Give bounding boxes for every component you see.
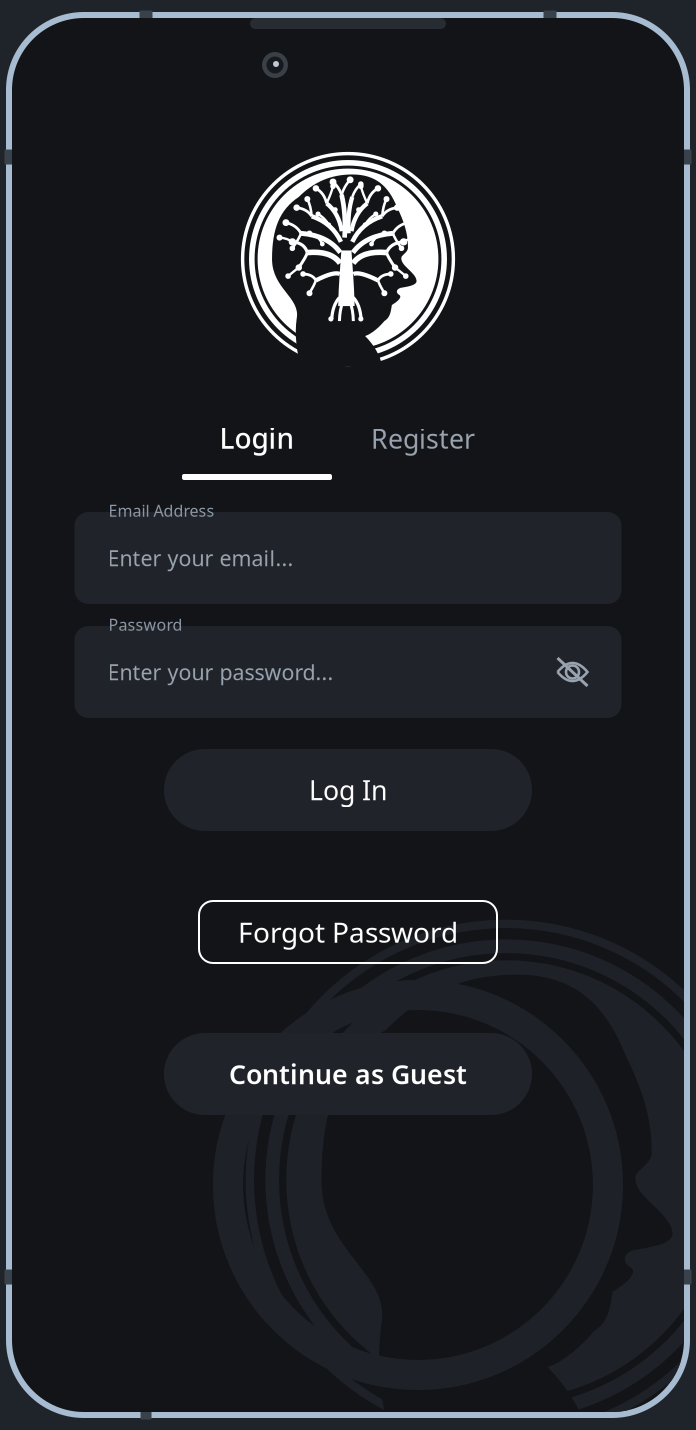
button[interactable]: Login: [174, 418, 340, 480]
staticText: Password: [108, 614, 182, 635]
button[interactable]: Forgot Password: [199, 901, 497, 963]
button[interactable]: Enter your email...: [74, 498, 621, 604]
staticText: Enter your email...: [107, 544, 293, 572]
button[interactable]: Log In: [164, 749, 532, 831]
staticText: Enter your password...: [107, 658, 333, 686]
button[interactable]: Enter your password...: [74, 612, 621, 718]
staticText: Continue as Guest: [229, 1056, 467, 1092]
staticText: Login: [219, 419, 294, 457]
button[interactable]: Register: [340, 418, 506, 479]
staticText: Email Address: [108, 500, 214, 521]
staticText: Forgot Password: [238, 913, 458, 951]
button[interactable]: Continue as Guest: [164, 1033, 532, 1115]
staticText: Log In: [309, 772, 387, 808]
staticText: Register: [371, 421, 475, 456]
